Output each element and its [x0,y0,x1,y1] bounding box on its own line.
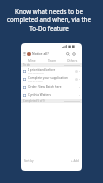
button[interactable]: Cynthia Watters [21,91,82,99]
button[interactable]: Menu [23,52,26,55]
button[interactable]: More options [72,52,76,56]
staticText: Notice all? [32,51,49,56]
staticText: Cynthia Watters [28,93,52,97]
staticText: Complete your supplication [28,76,68,80]
button[interactable]: + Add [71,159,79,163]
staticText: I prioritized before [28,68,56,72]
staticText: Completed 5 of 9 [23,99,45,103]
staticText: Know what needs to be completed and when… [7,7,91,33]
button[interactable]: Order: View Batch here [21,83,82,91]
button[interactable]: Mine [21,58,42,63]
staticText: + Add [71,159,79,163]
button[interactable]: Others [62,58,82,63]
button[interactable]: I prioritized before [21,67,82,75]
button[interactable]: Search [66,52,70,56]
button[interactable]: Team [42,58,62,63]
button[interactable]: Complete your supplication [21,75,82,83]
staticText: To do [23,63,30,67]
staticText: Order: View Batch here [28,85,62,89]
staticText: Sort by [24,159,34,163]
staticText: Due tomorrow [28,72,44,75]
button[interactable]: Sort by [24,159,34,163]
staticText: Mine [28,59,36,63]
staticText: Team [48,59,57,63]
staticText: Due in 3 days [28,80,43,83]
staticText: Others [67,59,78,63]
